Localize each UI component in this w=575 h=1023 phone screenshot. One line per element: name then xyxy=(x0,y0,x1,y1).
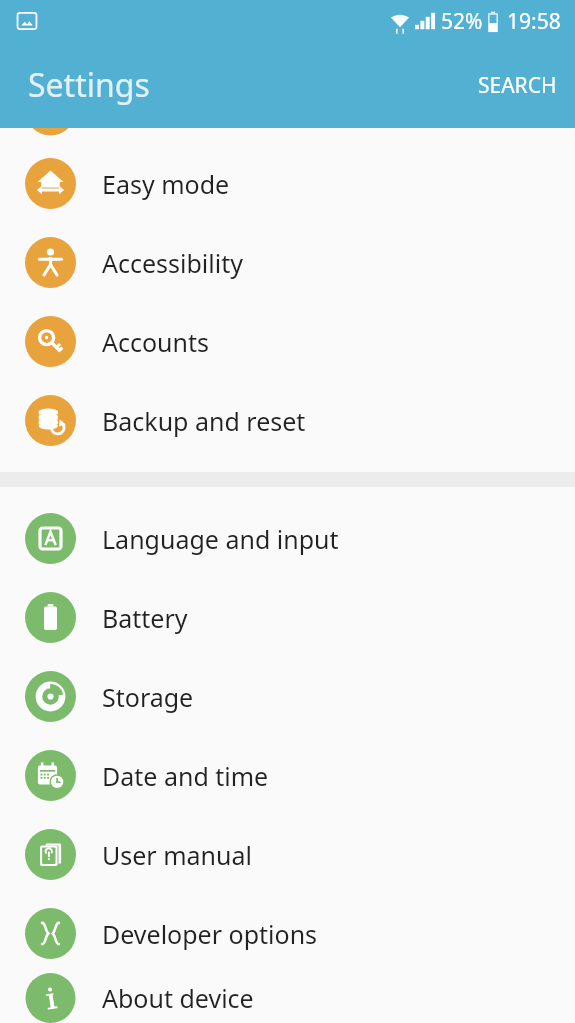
button[interactable]: Accessibility xyxy=(0,223,575,302)
button[interactable]: Accounts xyxy=(0,302,575,381)
staticText: 52% xyxy=(441,7,483,36)
staticText: Storage xyxy=(102,680,194,714)
staticText: Settings xyxy=(28,63,150,107)
staticText: Battery xyxy=(102,601,188,635)
staticText: Easy mode xyxy=(102,167,230,201)
button[interactable]: Storage xyxy=(0,657,575,736)
other: Screenshot captured xyxy=(16,10,38,32)
button[interactable]: Language and input xyxy=(0,499,575,578)
staticText: Language and input xyxy=(102,522,339,556)
button[interactable]: Easy mode xyxy=(0,144,575,223)
button[interactable]: Backup and reset xyxy=(0,381,575,460)
button[interactable]: Date and time xyxy=(0,736,575,815)
button[interactable]: User manual xyxy=(0,815,575,894)
staticText: Developer options xyxy=(102,917,318,951)
staticText: Accessibility xyxy=(102,246,243,280)
button[interactable]: SEARCH xyxy=(460,57,575,114)
button[interactable]: Battery xyxy=(0,578,575,657)
staticText: Backup and reset xyxy=(102,404,306,438)
staticText: About device xyxy=(102,981,254,1015)
staticText: Accounts xyxy=(102,325,210,359)
staticText: 19:58 xyxy=(507,7,561,36)
staticText: User manual xyxy=(102,838,252,872)
staticText: SEARCH xyxy=(478,71,557,100)
button[interactable]: Developer options xyxy=(0,894,575,973)
staticText: Date and time xyxy=(102,759,269,793)
button[interactable]: About device xyxy=(0,973,575,1023)
